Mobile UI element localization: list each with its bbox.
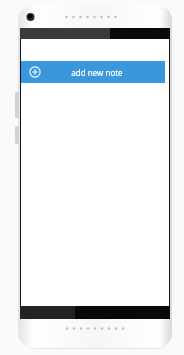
other: Power (15, 126, 19, 144)
button[interactable]: Add (21, 61, 165, 83)
other: Add (29, 66, 41, 78)
staticText: add new note (71, 67, 123, 78)
